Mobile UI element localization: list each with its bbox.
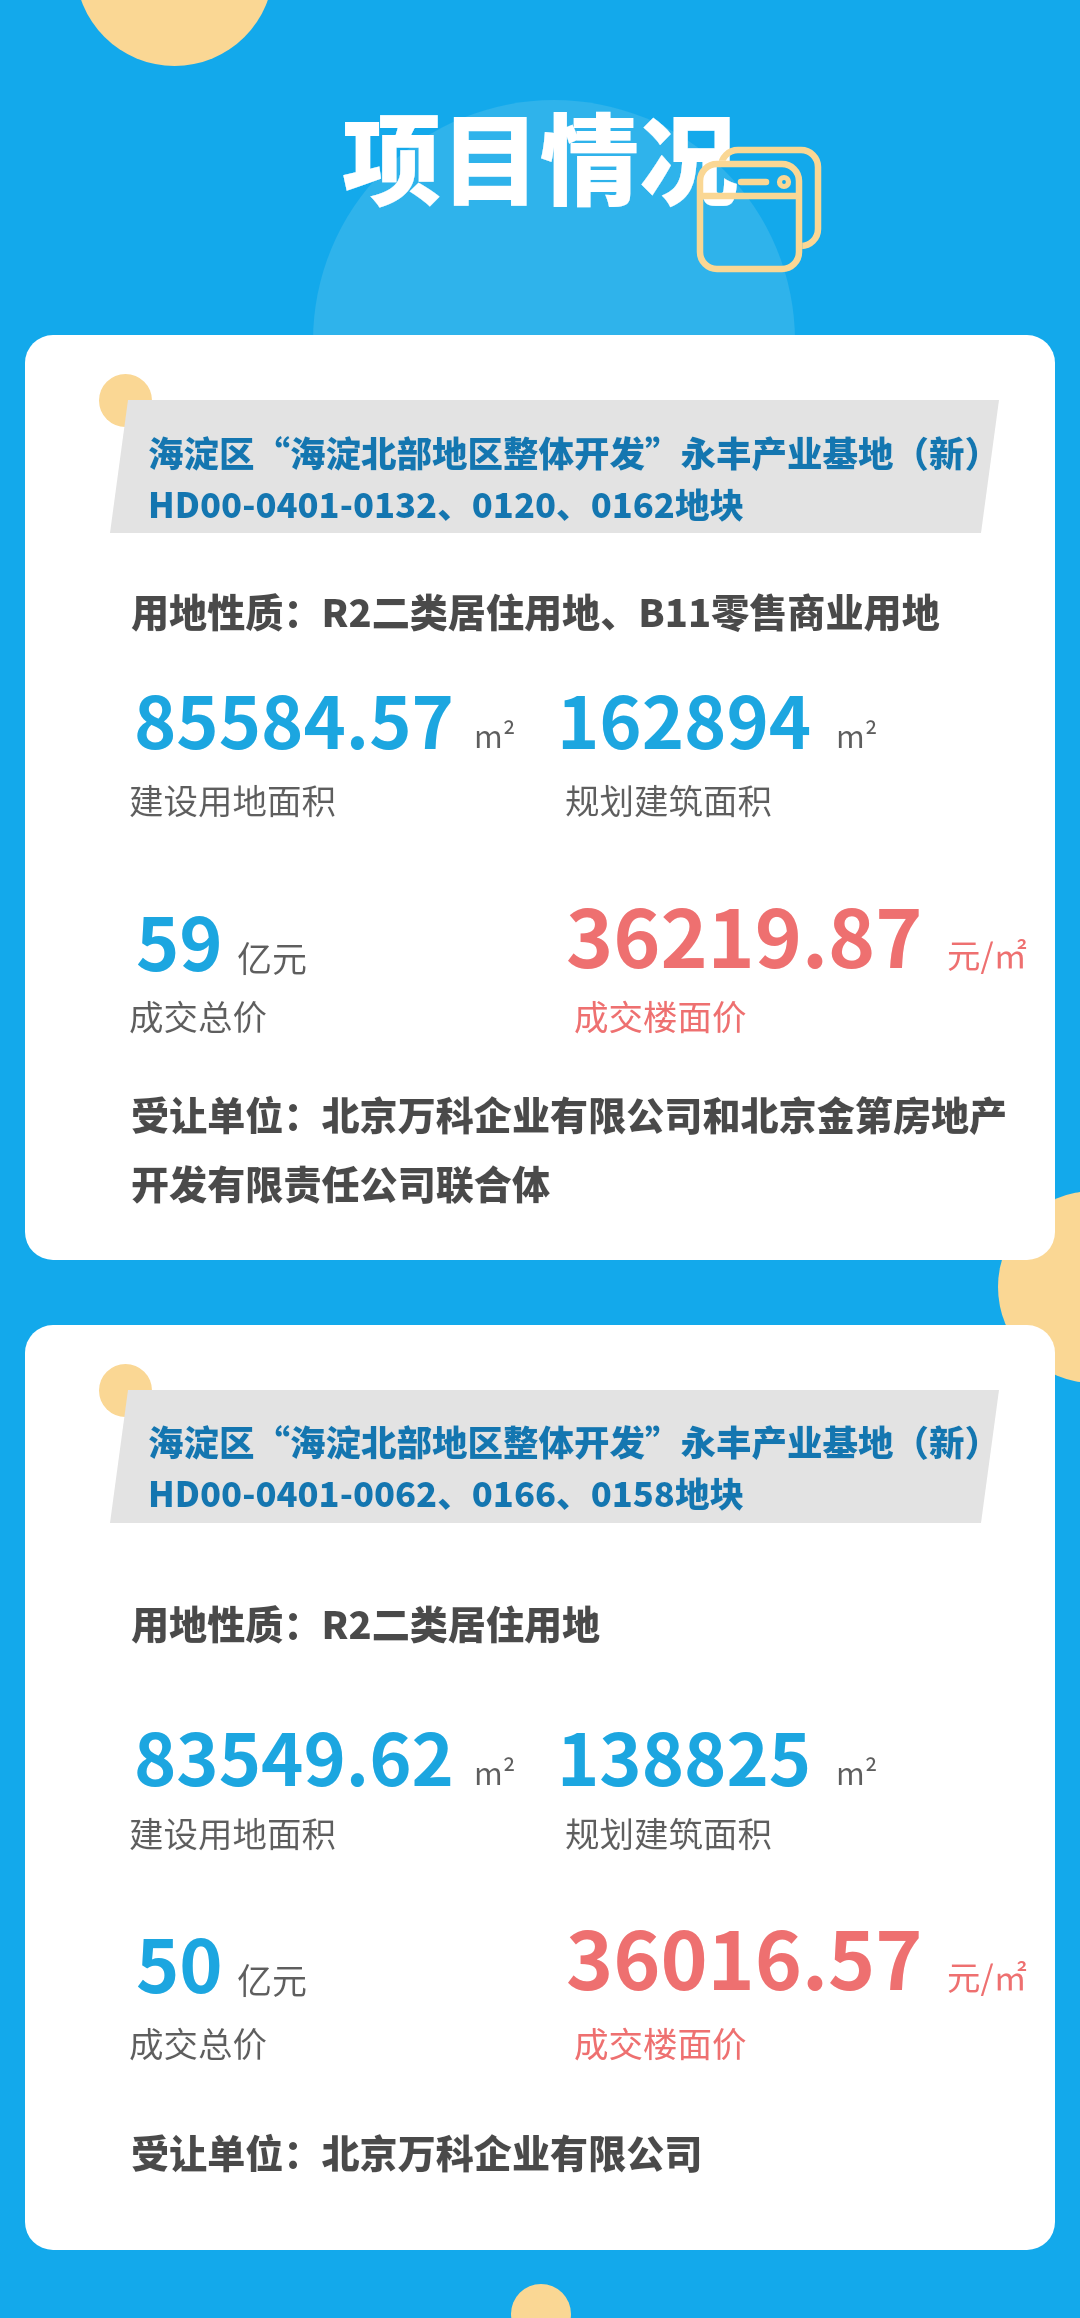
staticText: 受让单位：北京万科企业有限公司和北京金第房地产 <box>131 1086 1008 1141</box>
staticText: 36016.57 <box>566 1897 923 2013</box>
staticText: HD00-0401-0132、0120、0162地块 <box>148 478 745 528</box>
staticText: 59 <box>136 886 223 992</box>
staticText: 成交总价 <box>129 990 267 1040</box>
staticText: m² <box>474 1749 516 1794</box>
staticText: 85584.57 <box>134 666 454 770</box>
button[interactable] <box>25 1325 1055 2250</box>
staticText: 162894 <box>557 666 812 770</box>
staticText: 受让单位：北京万科企业有限公司 <box>131 2124 703 2179</box>
staticText: 成交楼面价 <box>574 990 747 1040</box>
staticText: 50 <box>136 1908 223 2014</box>
staticText: 建设用地面积 <box>129 774 336 824</box>
staticText: 规划建筑面积 <box>565 1807 772 1857</box>
staticText: 亿元 <box>237 931 308 982</box>
staticText: 用地性质：R2二类居住用地 <box>131 1595 601 1650</box>
staticText: 项目情况 <box>342 82 738 225</box>
staticText: m² <box>836 712 878 757</box>
staticText: HD00-0401-0062、0166、0158地块 <box>148 1467 745 1517</box>
staticText: 用地性质：R2二类居住用地、B11零售商业用地 <box>131 583 940 638</box>
staticText: 亿元 <box>237 1953 308 2004</box>
staticText: 建设用地面积 <box>129 1807 336 1857</box>
staticText: 成交总价 <box>129 2017 267 2067</box>
staticText: m² <box>474 712 516 757</box>
staticText: 开发有限责任公司联合体 <box>131 1155 551 1210</box>
staticText: 成交楼面价 <box>574 2017 747 2067</box>
staticText: 海淀区“海淀北部地区整体开发”永丰产业基地（新） <box>148 1415 1001 1466</box>
staticText: 元/㎡ <box>947 929 1027 977</box>
button[interactable] <box>25 335 1055 1260</box>
staticText: m² <box>836 1749 878 1794</box>
other: Project overview <box>696 144 824 276</box>
staticText: 规划建筑面积 <box>565 774 772 824</box>
staticText: 36219.87 <box>566 875 923 991</box>
staticText: 83549.62 <box>134 1703 454 1807</box>
staticText: 海淀区“海淀北部地区整体开发”永丰产业基地（新） <box>148 426 1001 477</box>
staticText: 元/㎡ <box>947 1951 1027 1999</box>
staticText: 138825 <box>557 1703 812 1807</box>
